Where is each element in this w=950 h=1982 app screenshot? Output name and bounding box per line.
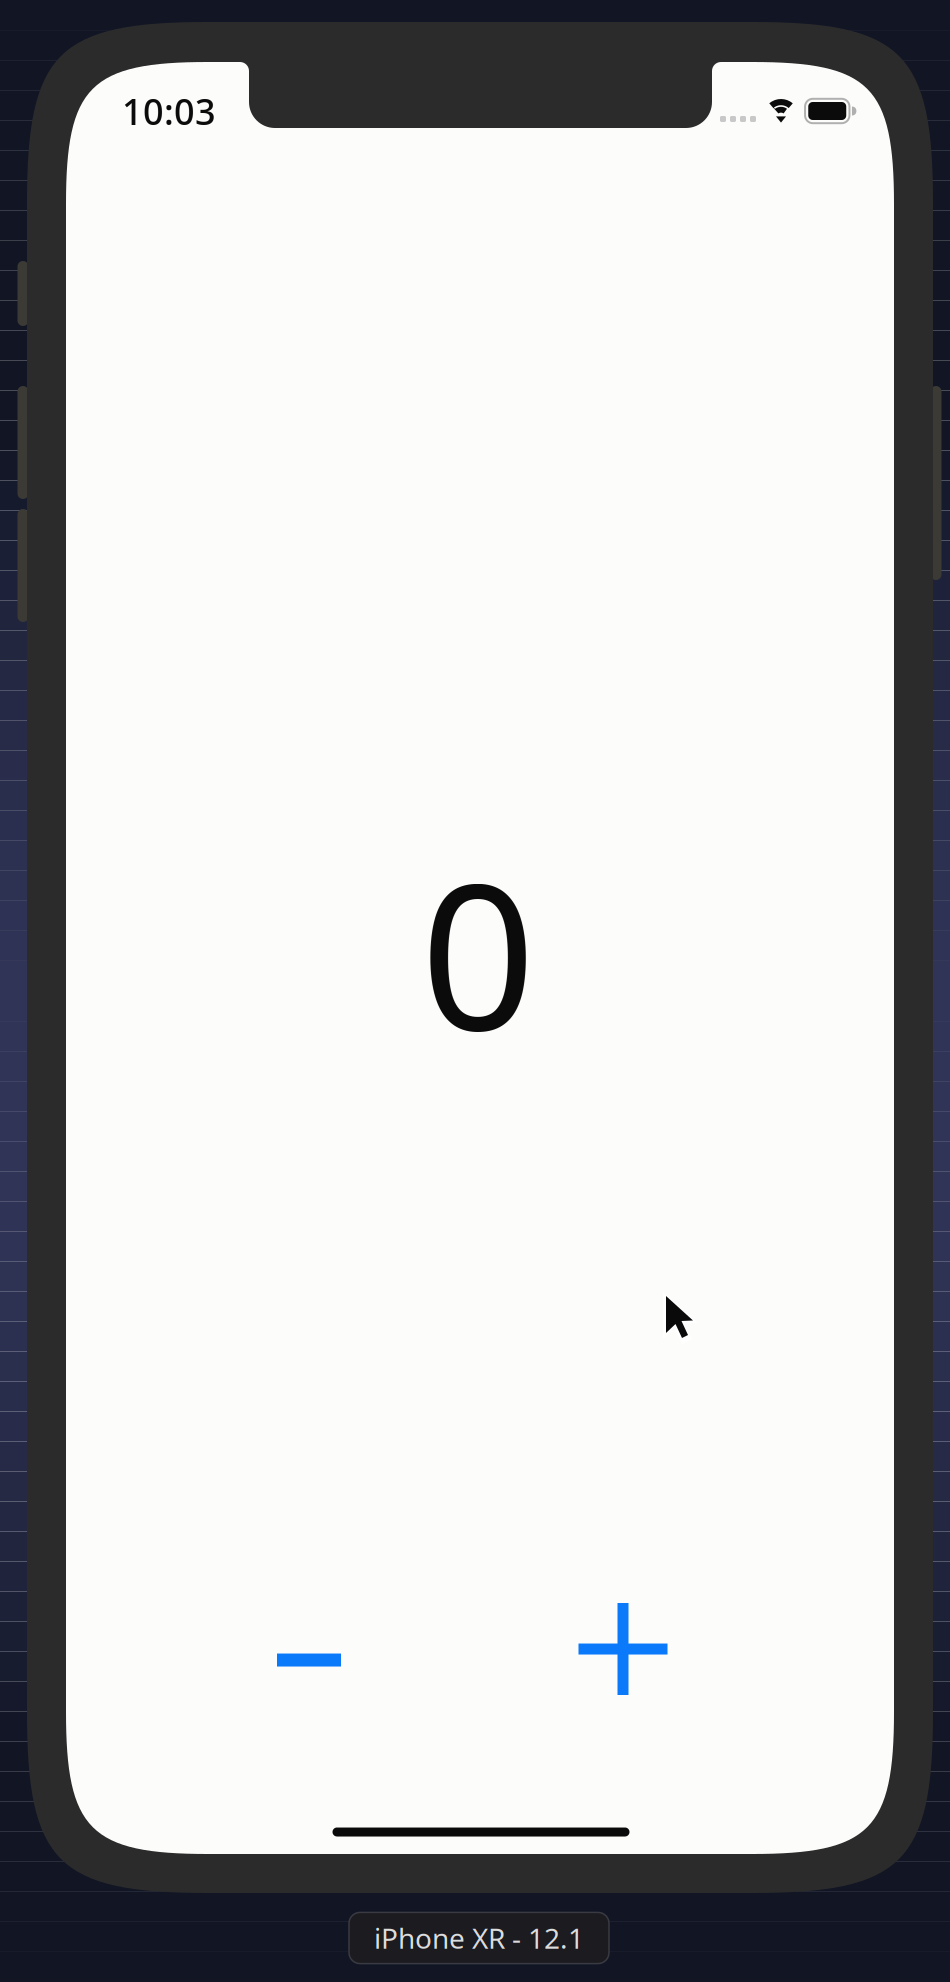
button[interactable]: Decrement: [234, 1585, 384, 1735]
staticText: 0: [420, 818, 535, 1086]
button[interactable]: Increment: [548, 1574, 698, 1724]
staticText: 10:03: [122, 87, 216, 135]
staticText: iPhone XR - 12.1: [374, 1919, 584, 1957]
